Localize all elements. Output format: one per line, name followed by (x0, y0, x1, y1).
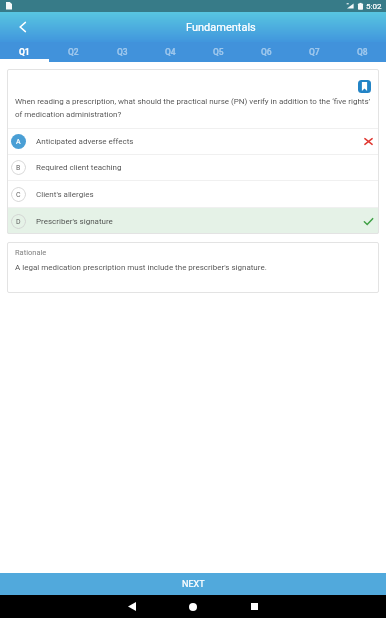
button[interactable]: Back (13, 17, 33, 37)
button[interactable]: Q3 (98, 42, 146, 62)
staticText: A (16, 138, 21, 146)
button[interactable]: Bookmark (358, 80, 371, 93)
button[interactable]: Home (174, 595, 212, 618)
staticText: D (16, 218, 21, 226)
staticText: When reading a prescription, what should… (15, 97, 373, 119)
button[interactable]: A (7, 129, 379, 154)
staticText: Rationale (15, 248, 47, 257)
button[interactable]: Back (113, 595, 151, 618)
button[interactable]: Q1 (0, 42, 49, 62)
staticText: Q7 (309, 47, 320, 57)
staticText: A legal medication prescription must inc… (15, 263, 267, 272)
button[interactable]: Q5 (194, 42, 242, 62)
button[interactable]: NEXT (0, 573, 386, 595)
staticText: Required client teaching (36, 163, 122, 172)
button[interactable]: B (7, 155, 379, 180)
staticText: Client's allergies (36, 190, 94, 199)
staticText: Q1 (19, 47, 30, 57)
staticText: Anticipated adverse effects (36, 137, 134, 146)
button[interactable]: Recents (235, 595, 273, 618)
staticText: Q2 (68, 47, 79, 57)
button[interactable]: Q4 (146, 42, 194, 62)
staticText: B (16, 164, 21, 172)
staticText: Q4 (165, 47, 176, 57)
staticText: Q5 (213, 47, 224, 57)
staticText: NEXT (182, 579, 205, 590)
button[interactable]: Q2 (49, 42, 98, 62)
button[interactable]: Q8 (338, 42, 386, 62)
staticText: Q8 (357, 47, 368, 57)
button[interactable]: Q7 (290, 42, 338, 62)
staticText: C (16, 191, 21, 199)
staticText: 5:02 (366, 2, 382, 11)
button[interactable]: D (7, 208, 379, 234)
staticText: Fundamentals (186, 21, 256, 34)
button[interactable]: Q6 (242, 42, 290, 62)
staticText: Prescriber's signature (36, 217, 113, 226)
staticText: Q3 (117, 47, 128, 57)
button[interactable]: C (7, 181, 379, 207)
staticText: Q6 (261, 47, 272, 57)
